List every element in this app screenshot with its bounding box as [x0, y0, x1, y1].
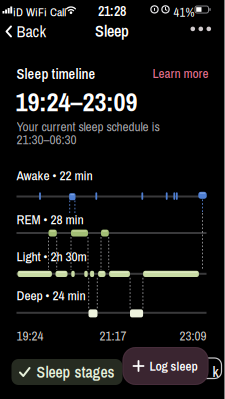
staticText: REM • 28 min — [16, 210, 83, 228]
staticText: 23:09 — [179, 327, 206, 345]
staticText: Back — [16, 20, 46, 42]
staticText: k — [212, 362, 218, 381]
staticText: iD WiFi Call — [13, 4, 66, 20]
staticText: Deep • 24 min — [16, 286, 85, 304]
staticText: 19:24 — [16, 327, 43, 345]
button[interactable]: More — [190, 27, 211, 31]
staticText: Your current sleep schedule is — [16, 117, 159, 135]
button[interactable]: Back — [5, 20, 46, 42]
staticText: 41% — [173, 4, 194, 20]
staticText: Light • 2h 30m — [16, 247, 86, 265]
button[interactable]: Learn more — [152, 64, 208, 82]
staticText: 21:30–06:30 — [16, 130, 76, 148]
button[interactable]: Sleep stages — [11, 359, 122, 385]
staticText: Learn more — [152, 64, 208, 82]
staticText: 21:28 — [98, 1, 126, 20]
staticText: Sleep stages — [36, 361, 114, 383]
button[interactable]: Log sleep — [122, 347, 208, 385]
staticText: Log sleep — [149, 357, 197, 375]
staticText: Sleep timeline — [16, 64, 95, 83]
staticText: 21:17 — [99, 327, 126, 345]
staticText: Sleep — [95, 20, 129, 42]
staticText: Awake • 22 min — [16, 166, 92, 184]
staticText: 19:24–23:09 — [15, 84, 137, 119]
